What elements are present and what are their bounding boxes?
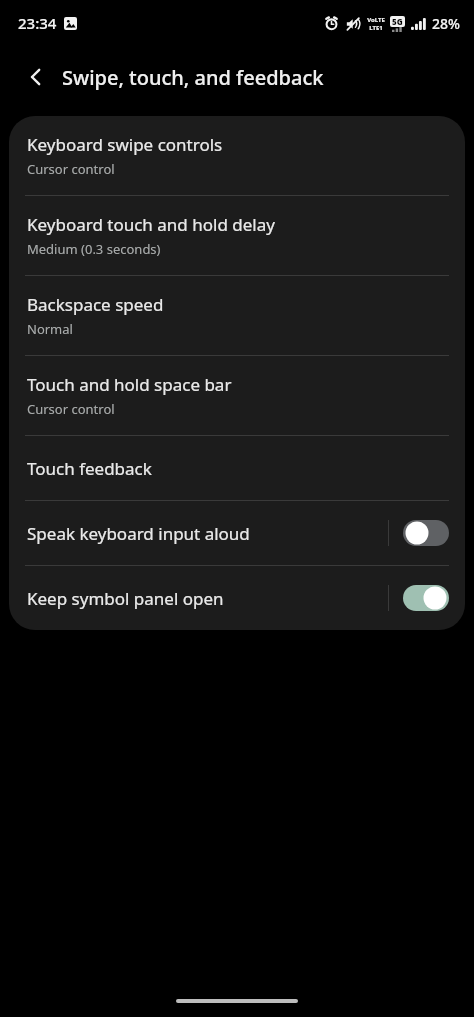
button[interactable]: Keyboard touch and hold delay [9,196,465,275]
button[interactable]: Touch feedback [9,436,465,500]
staticText: Normal [27,320,73,338]
button[interactable]: Off [403,520,449,546]
button[interactable]: Keyboard swipe controls [9,116,465,195]
staticText: Cursor control [27,400,115,418]
staticText: Keep symbol panel open [27,587,388,610]
button[interactable]: Back [16,57,56,97]
button[interactable]: Backspace speed [9,276,465,355]
button[interactable]: Touch and hold space bar [9,356,465,435]
staticText: Touch and hold space bar [27,373,232,396]
button[interactable]: Speak keyboard input aloud [9,501,465,565]
staticText: Keyboard touch and hold delay [27,213,275,236]
staticText: Medium (0.3 seconds) [27,240,161,258]
staticText: Cursor control [27,160,115,178]
staticText: 28% [432,14,460,33]
staticText: Speak keyboard input aloud [27,522,388,545]
staticText: 5G [392,16,403,27]
staticText: LTE1 [369,24,383,32]
button[interactable]: On [403,585,449,611]
staticText: Backspace speed [27,293,164,316]
staticText: Swipe, touch, and feedback [62,64,324,91]
staticText: Touch feedback [27,457,152,480]
staticText: 23:34 [18,13,57,33]
button[interactable]: Keep symbol panel open [9,566,465,630]
staticText: Keyboard swipe controls [27,133,223,156]
staticText: VoLTE [367,16,385,24]
